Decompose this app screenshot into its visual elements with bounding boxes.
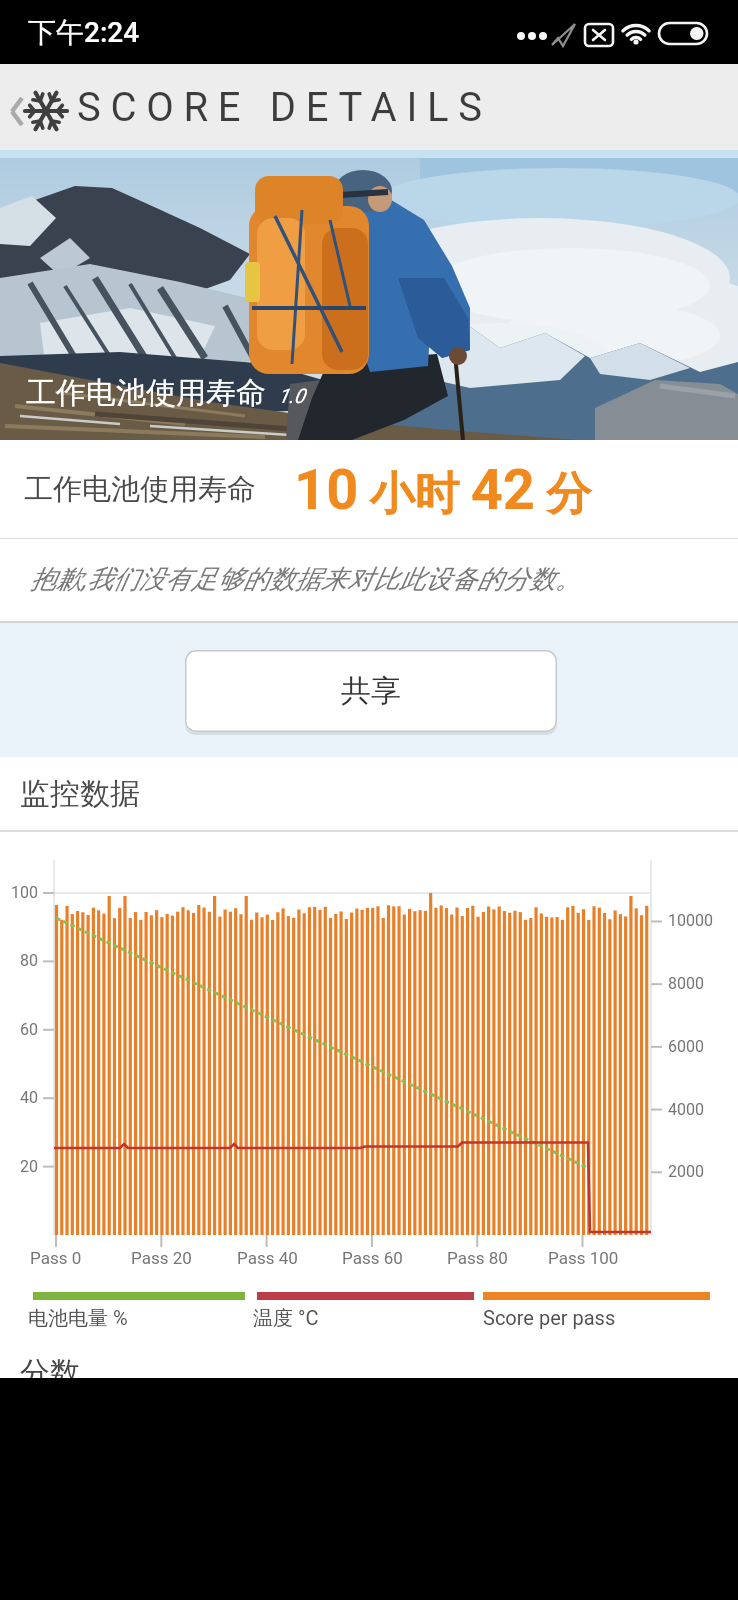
- staticText: 温度 °C: [253, 1306, 319, 1331]
- staticText: 20: [20, 1157, 38, 1176]
- button[interactable]: 共享: [185, 650, 557, 732]
- staticText: 60: [20, 1020, 38, 1039]
- staticText: 共享: [341, 672, 401, 710]
- staticText: 40: [20, 1088, 38, 1107]
- staticText: Pass 20: [131, 1248, 192, 1268]
- staticText: 下午2:24: [28, 15, 140, 50]
- staticText: 分数: [20, 1354, 80, 1392]
- staticText: 4000: [668, 1100, 704, 1119]
- staticText: Pass 100: [548, 1248, 619, 1268]
- staticText: Pass 0: [30, 1248, 82, 1268]
- staticText: 抱歉,我们没有足够的数据来对比此设备的分数。: [30, 563, 581, 596]
- staticText: Pass 60: [342, 1248, 403, 1268]
- staticText: Pass 40: [237, 1248, 298, 1268]
- staticText: 2000: [668, 1162, 704, 1181]
- staticText: 10 小时 42 分: [294, 457, 592, 523]
- staticText: 80: [20, 951, 38, 970]
- staticText: 6000: [668, 1037, 704, 1056]
- staticText: 工作电池使用寿命: [24, 471, 256, 508]
- staticText: Pass 80: [447, 1248, 508, 1268]
- staticText: 8000: [668, 974, 704, 993]
- button[interactable]: [0, 84, 40, 134]
- staticText: Score per pass: [483, 1306, 616, 1329]
- staticText: 100: [11, 883, 38, 902]
- staticText: SCORE DETAILS: [77, 84, 492, 131]
- staticText: 1.0: [278, 384, 305, 407]
- staticText: 10000: [668, 911, 713, 930]
- staticText: 监控数据: [20, 775, 140, 813]
- staticText: 工作电池使用寿命: [26, 374, 266, 412]
- staticText: 电池电量 %: [28, 1306, 128, 1331]
